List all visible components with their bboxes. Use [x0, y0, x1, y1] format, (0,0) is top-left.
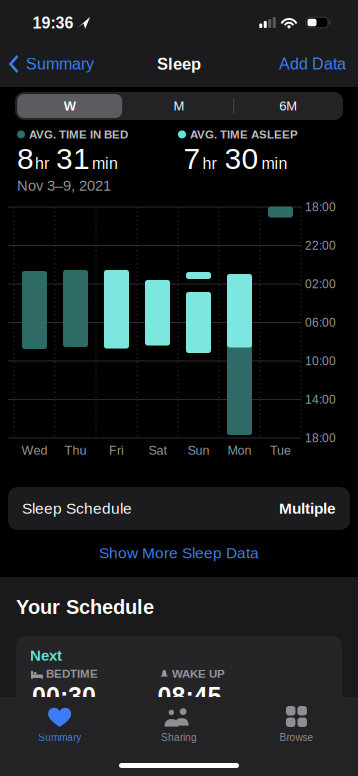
staticText: W — [64, 99, 76, 113]
staticText: Summary — [38, 732, 81, 743]
staticText: Sun — [187, 443, 209, 457]
staticText: Show More Sleep Data — [99, 544, 259, 562]
staticText: 6M — [279, 99, 297, 113]
staticText: min — [261, 154, 287, 172]
staticText: 00:30 — [32, 682, 96, 710]
button[interactable]: W — [17, 94, 122, 118]
staticText: hr — [202, 154, 216, 172]
staticText: Mon — [227, 443, 251, 457]
staticText: 06:00 — [305, 316, 336, 329]
staticText: AVG. TIME IN BED — [29, 128, 128, 141]
staticText: BEDTIME — [46, 667, 98, 680]
button[interactable]: Summary — [9, 54, 94, 73]
button[interactable]: Add Data — [279, 55, 346, 73]
staticText: Sharing — [161, 732, 197, 743]
button[interactable]: Sharing — [119, 697, 239, 757]
staticText: M — [173, 99, 184, 113]
staticText: 02:00 — [305, 277, 336, 291]
staticText: Wed — [21, 443, 47, 457]
staticText: Summary — [26, 55, 94, 73]
staticText: 30 — [224, 142, 258, 175]
button[interactable]: Sleep Schedule — [8, 487, 350, 530]
staticText: Sleep — [157, 55, 201, 73]
button[interactable]: Show More Sleep Data — [99, 544, 259, 562]
staticText: Sat — [148, 443, 166, 457]
staticText: Your Schedule — [16, 596, 154, 618]
staticText: min — [92, 154, 118, 172]
staticText: Add Data — [279, 55, 346, 73]
staticText: Fri — [109, 443, 124, 457]
staticText: 22:00 — [305, 239, 336, 252]
staticText: WAKE UP — [172, 667, 225, 680]
button[interactable]: Next — [16, 636, 342, 756]
staticText: 18:00 — [305, 431, 336, 445]
button[interactable]: 6M — [236, 94, 341, 118]
staticText: Multiple — [279, 500, 336, 517]
staticText: 19:36 — [32, 14, 73, 32]
staticText: 31 — [56, 142, 90, 175]
staticText: Tue — [270, 443, 291, 457]
button[interactable]: Summary — [0, 697, 119, 757]
staticText: 08:45 — [157, 682, 221, 710]
staticText: Browse — [279, 732, 313, 743]
staticText: Next — [30, 647, 62, 664]
staticText: 7 — [183, 142, 200, 175]
staticText: hr — [35, 154, 49, 172]
staticText: Sleep Schedule — [22, 500, 132, 517]
staticText: Thu — [64, 443, 86, 457]
button[interactable]: Browse — [239, 697, 358, 757]
staticText: Nov 3–9, 2021 — [17, 177, 111, 194]
button[interactable]: M — [126, 94, 231, 118]
staticText: 8 — [17, 142, 34, 175]
staticText: 10:00 — [305, 354, 336, 368]
staticText: AVG. TIME ASLEEP — [190, 128, 298, 141]
staticText: 14:00 — [305, 393, 336, 406]
staticText: 18:00 — [305, 200, 336, 214]
